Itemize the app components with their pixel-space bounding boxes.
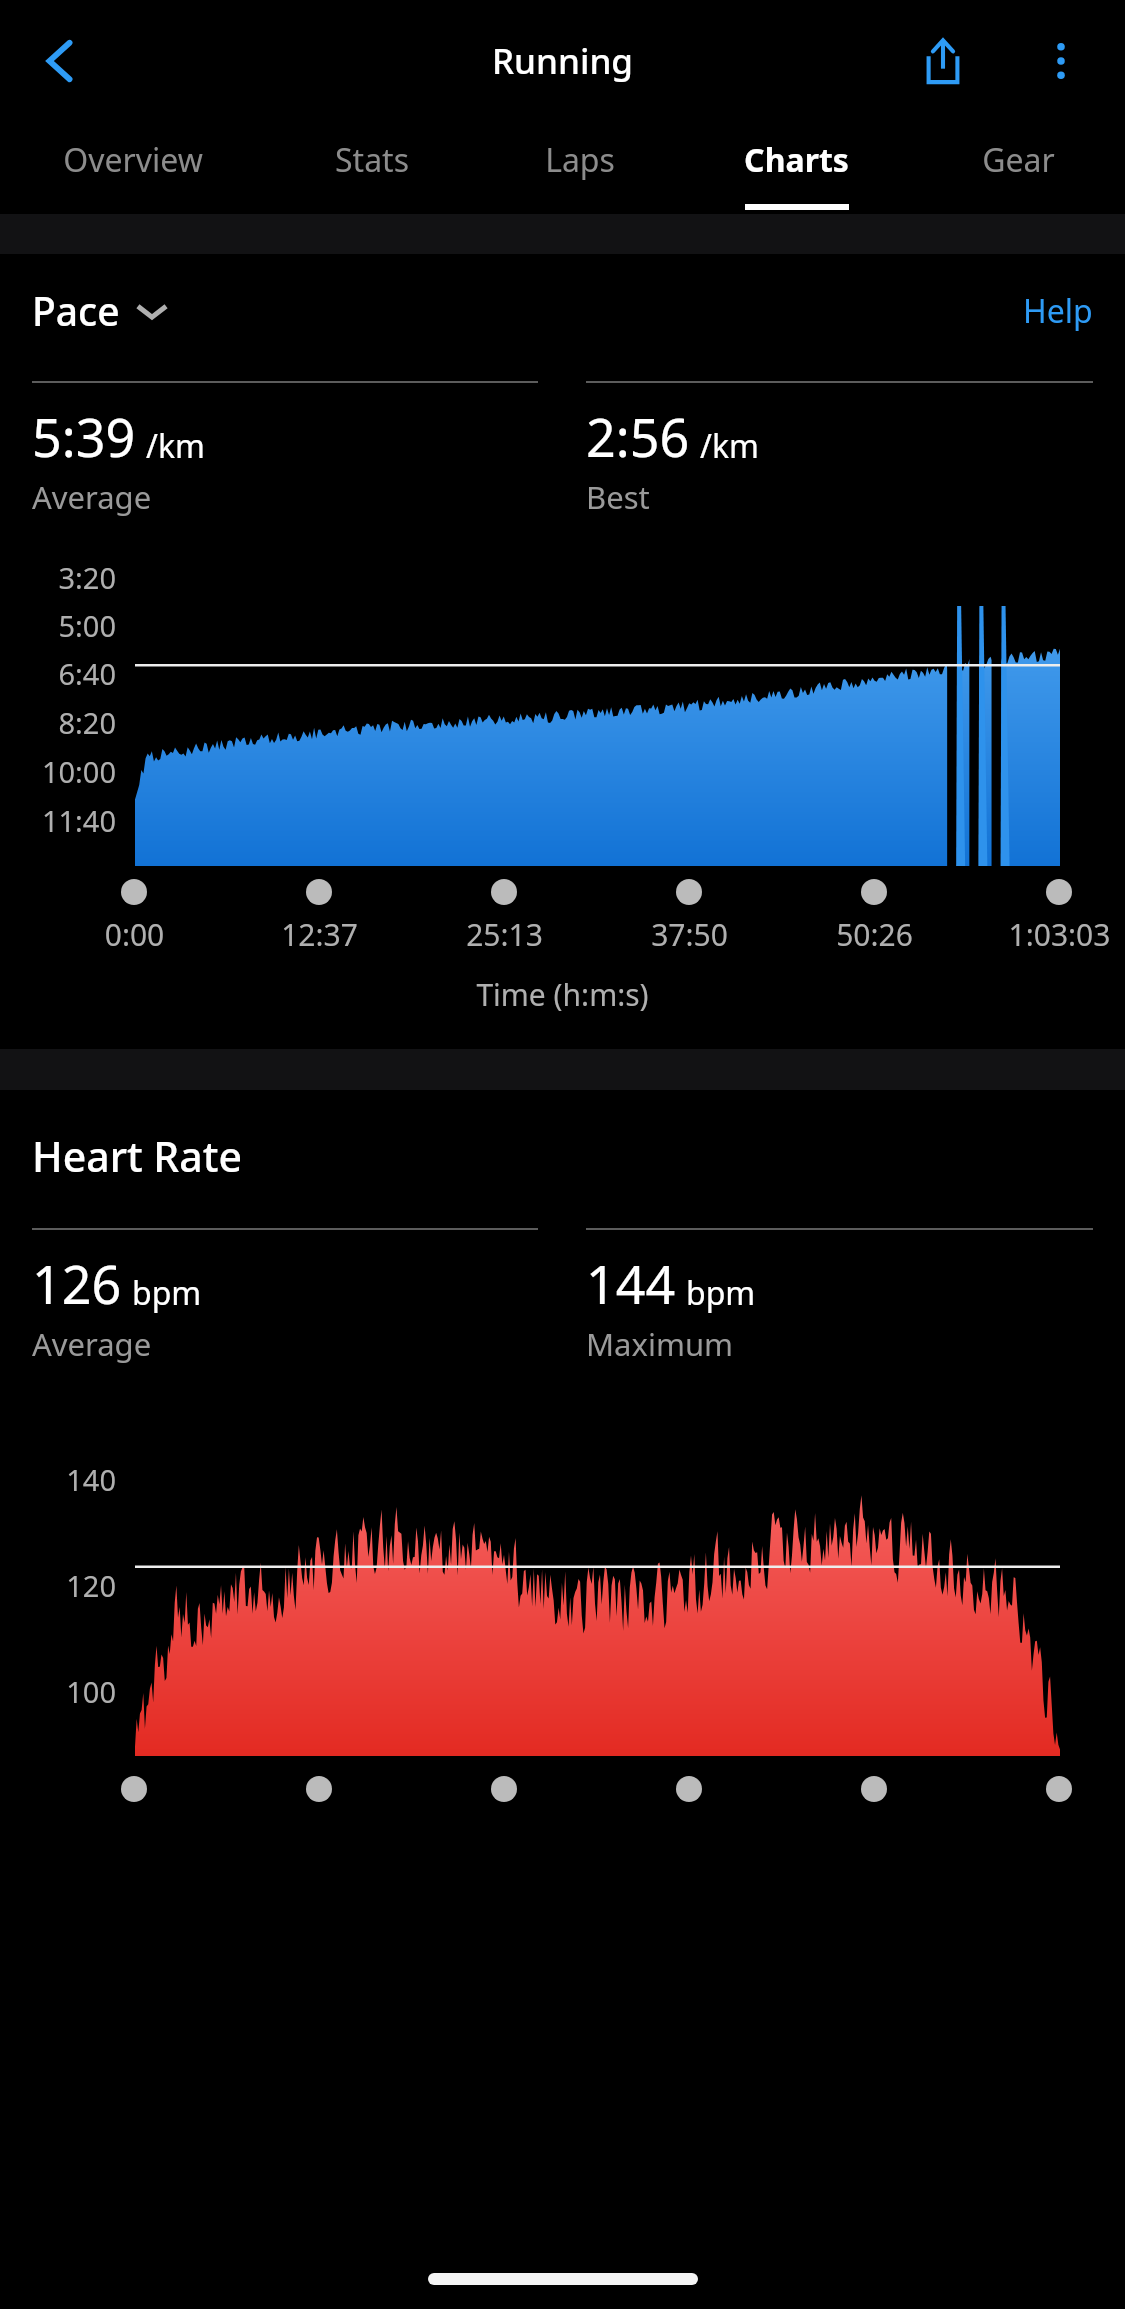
staticText: 3:20 <box>0 558 116 597</box>
staticText: 37:50 <box>127 914 1125 955</box>
staticText: 8:20 <box>0 703 116 742</box>
staticText: 140 <box>0 1460 116 1499</box>
staticText: Pace <box>32 284 120 337</box>
staticText: Time (h:m:s) <box>0 974 1125 1015</box>
button[interactable]: Charts <box>681 122 911 214</box>
button[interactable]: Help <box>1023 289 1093 333</box>
staticText: Charts <box>744 138 849 182</box>
staticText: 6:40 <box>0 654 116 693</box>
staticText: Help <box>1023 289 1093 333</box>
staticText: Best <box>586 476 650 518</box>
button[interactable]: Overview <box>0 122 265 214</box>
staticText: Maximum <box>586 1323 734 1365</box>
button[interactable]: Share <box>901 19 985 103</box>
staticText: 120 <box>0 1566 116 1605</box>
staticText: 126 <box>32 1248 122 1319</box>
staticText: Heart Rate <box>32 1128 242 1184</box>
staticText: 0:00 <box>0 914 697 955</box>
button[interactable]: More options <box>1019 19 1103 103</box>
staticText: 2:56 <box>586 401 690 472</box>
staticText: /km <box>146 424 205 468</box>
staticText: Stats <box>335 138 409 182</box>
staticText: /km <box>700 424 759 468</box>
button[interactable]: Pace <box>32 284 168 337</box>
staticText: 5:00 <box>0 606 116 645</box>
staticText: Average <box>32 476 152 518</box>
staticText: 10:00 <box>0 752 116 791</box>
staticText: 25:13 <box>0 914 1067 955</box>
staticText: Laps <box>545 138 615 182</box>
staticText: 11:40 <box>0 801 116 840</box>
staticText: Gear <box>982 138 1055 182</box>
button[interactable]: Stats <box>265 122 478 214</box>
staticText: 1:03:03 <box>497 914 1125 955</box>
button[interactable]: Laps <box>478 122 681 214</box>
staticText: bpm <box>686 1271 756 1315</box>
staticText: 5:39 <box>32 401 136 472</box>
button[interactable]: Gear <box>911 122 1125 214</box>
staticText: Overview <box>63 138 203 182</box>
staticText: 12:37 <box>0 914 882 955</box>
staticText: 144 <box>586 1248 676 1319</box>
staticText: Running <box>492 37 634 85</box>
staticText: 50:26 <box>312 914 1125 955</box>
button[interactable]: Back <box>20 21 100 101</box>
staticText: bpm <box>132 1271 202 1315</box>
staticText: 100 <box>0 1672 116 1711</box>
staticText: Average <box>32 1323 152 1365</box>
